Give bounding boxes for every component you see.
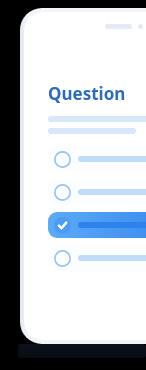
- button[interactable]: Answer option: [48, 245, 146, 271]
- button[interactable]: Answer option: [48, 179, 146, 205]
- staticText: Question: [48, 82, 126, 105]
- other: Selected answer: [54, 217, 71, 234]
- button[interactable]: Selected answer: [48, 212, 146, 238]
- other: Answer option: [54, 151, 71, 168]
- other: Answer option: [54, 184, 71, 201]
- other: Answer option: [54, 250, 71, 267]
- button[interactable]: Answer option: [48, 146, 146, 172]
